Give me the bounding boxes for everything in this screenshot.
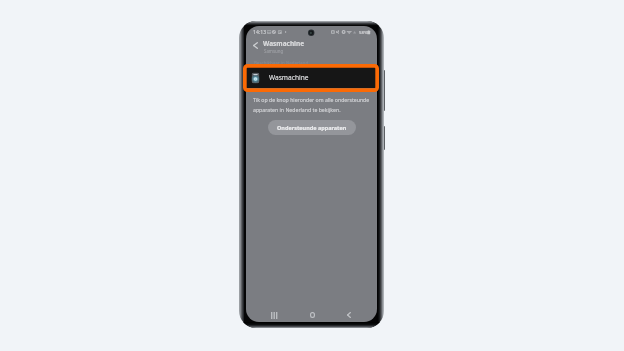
button[interactable]: Highlighted device row — [243, 64, 379, 92]
staticText: Tik op de knop hieronder om alle onderst… — [253, 96, 373, 114]
staticText: 14:13 — [253, 29, 267, 36]
button[interactable]: Home — [303, 310, 321, 320]
staticText: Wasmachine — [263, 39, 305, 48]
staticText: 58% — [359, 29, 368, 35]
button[interactable]: Recent apps — [265, 310, 283, 320]
staticText: Ondersteunde apparaten — [277, 124, 347, 131]
staticText: Beschikbaar in Nederland — [254, 60, 309, 66]
staticText: Wasmachine — [269, 73, 309, 82]
button[interactable]: Wasmachine — [246, 67, 377, 88]
staticText: Samsung — [264, 48, 284, 54]
button[interactable]: Back — [340, 310, 358, 320]
button[interactable]: Ondersteunde apparaten — [268, 120, 356, 135]
button[interactable]: Back — [249, 38, 262, 52]
